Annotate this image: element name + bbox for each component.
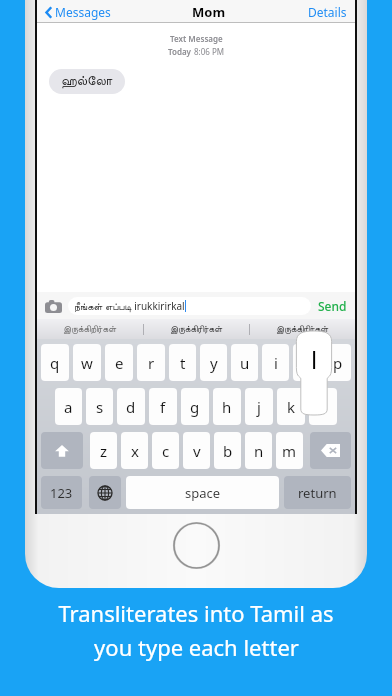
button[interactable]: இருக்கிரிர்கள் — [250, 319, 355, 339]
button[interactable]: g — [181, 388, 209, 425]
button[interactable]: q — [41, 344, 69, 381]
button[interactable]: Numbers — [41, 476, 82, 509]
button[interactable]: Change keyboard — [89, 476, 121, 509]
staticText: Messages — [55, 4, 111, 20]
button[interactable]: h — [213, 388, 241, 425]
button[interactable]: Camera — [43, 296, 63, 316]
staticText: t — [180, 353, 186, 373]
button[interactable]: o — [293, 344, 320, 381]
staticText: y — [210, 353, 218, 373]
button[interactable]: Home — [173, 522, 220, 569]
button[interactable]: Details — [306, 4, 349, 20]
button[interactable]: s — [86, 388, 113, 425]
staticText: x — [131, 441, 139, 461]
staticText: இருக்கிரிர்கள் — [170, 325, 223, 334]
button[interactable]: t — [169, 344, 196, 381]
button[interactable]: நீங்கள் எப்படி irukkirirkal — [68, 297, 311, 315]
staticText: e — [115, 353, 124, 373]
button[interactable]: i — [262, 344, 289, 381]
staticText: l — [321, 397, 325, 417]
button[interactable]: p — [324, 344, 351, 381]
staticText: i — [274, 353, 278, 373]
staticText: space — [185, 484, 221, 502]
staticText: you type each letter — [94, 632, 299, 662]
button[interactable]: n — [245, 432, 272, 469]
button[interactable]: Shift — [41, 432, 83, 469]
staticText: k — [287, 397, 296, 417]
staticText: நீங்கள் எப்படி irukkirirkal — [74, 299, 185, 313]
button[interactable]: m — [276, 432, 303, 469]
button[interactable]: d — [117, 388, 145, 425]
staticText: n — [254, 441, 264, 461]
button[interactable]: Send — [316, 298, 349, 314]
button[interactable]: k — [277, 388, 305, 425]
staticText: r — [148, 353, 155, 373]
staticText: f — [160, 397, 166, 417]
staticText: return — [298, 484, 337, 502]
staticText: c — [162, 441, 170, 461]
staticText: b — [223, 441, 233, 461]
staticText: ஹல்லோ — [61, 75, 113, 88]
staticText: 8:06 PM — [194, 46, 225, 57]
staticText: d — [126, 397, 136, 417]
button[interactable]: b — [214, 432, 241, 469]
staticText: w — [81, 353, 93, 373]
staticText: Send — [318, 298, 347, 314]
button[interactable]: u — [231, 344, 258, 381]
staticText: 123 — [50, 484, 73, 502]
staticText: l — [311, 343, 318, 376]
button[interactable]: a — [55, 388, 82, 425]
staticText: v — [193, 441, 201, 461]
staticText: g — [190, 397, 200, 417]
button[interactable]: Return — [284, 476, 351, 509]
staticText: Text Message — [170, 33, 223, 44]
button[interactable]: y — [200, 344, 227, 381]
staticText: Transliterates into Tamil as — [58, 598, 334, 628]
staticText: q — [50, 353, 60, 373]
staticText: Details — [308, 4, 347, 20]
button[interactable]: l — [309, 388, 337, 425]
staticText: Today — [168, 46, 194, 57]
button[interactable]: இருக்கிறிர்கள் — [37, 319, 143, 339]
staticText: j — [257, 397, 261, 417]
button[interactable]: v — [183, 432, 210, 469]
staticText: p — [333, 353, 343, 373]
button[interactable]: Delete — [310, 432, 351, 469]
button[interactable]: இருக்கிரிர்கள் — [144, 319, 249, 339]
button[interactable]: e — [105, 344, 133, 381]
button[interactable]: j — [245, 388, 273, 425]
button[interactable]: Messages — [43, 4, 113, 20]
staticText: Mom — [192, 3, 226, 21]
button[interactable]: f — [149, 388, 177, 425]
staticText: h — [222, 397, 232, 417]
button[interactable]: z — [90, 432, 117, 469]
staticText: இருக்கிறிர்கள் — [63, 325, 117, 334]
button[interactable]: w — [73, 344, 101, 381]
staticText: z — [100, 441, 108, 461]
button[interactable]: x — [121, 432, 148, 469]
staticText: இருக்கிரிர்கள் — [276, 325, 329, 334]
staticText: s — [96, 397, 104, 417]
button[interactable]: ஹல்லோ — [49, 69, 125, 94]
staticText: a — [64, 397, 73, 417]
button[interactable]: space — [126, 476, 279, 509]
button[interactable]: c — [152, 432, 179, 469]
staticText: m — [282, 441, 297, 461]
staticText: u — [240, 353, 250, 373]
button[interactable]: r — [137, 344, 165, 381]
